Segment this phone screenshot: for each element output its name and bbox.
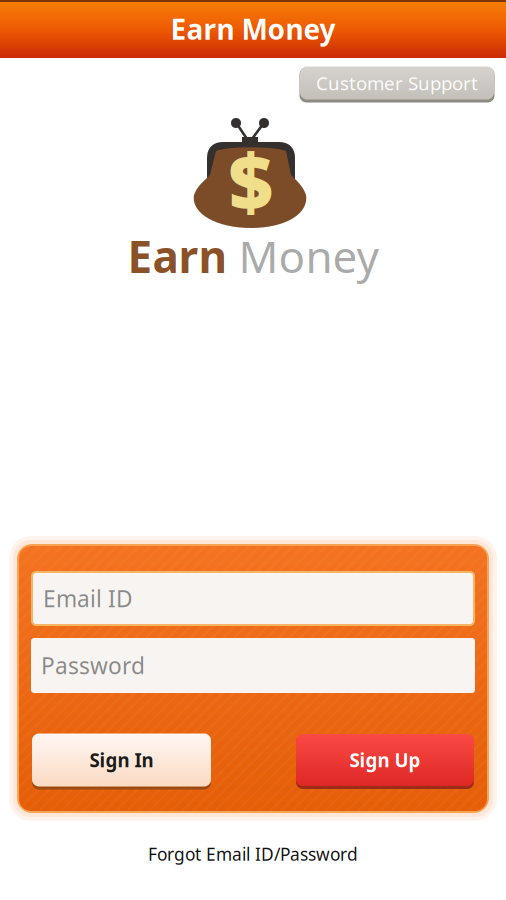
staticText: Earn — [127, 227, 227, 285]
staticText: Earn Money — [170, 10, 335, 48]
staticText: Email ID — [43, 583, 133, 613]
button[interactable]: Sign Up — [295, 731, 475, 789]
staticText: Sign Up — [349, 748, 420, 772]
staticText: $ — [228, 129, 273, 231]
staticText: Customer Support — [316, 71, 478, 95]
staticText: Forgot Email ID/Password — [148, 842, 358, 865]
staticText: Password — [41, 650, 145, 680]
button[interactable]: Customer Support — [299, 65, 495, 101]
button[interactable]: Sign In — [31, 731, 212, 789]
staticText: Money — [227, 227, 378, 285]
staticText: Sign In — [89, 748, 153, 772]
button[interactable]: Forgot Email ID/Password — [0, 834, 506, 874]
